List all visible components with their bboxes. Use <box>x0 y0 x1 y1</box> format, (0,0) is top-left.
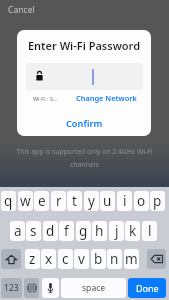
button[interactable]: q <box>1 191 16 211</box>
staticText: e <box>38 192 46 210</box>
button[interactable]: z <box>25 249 40 269</box>
button[interactable]: space <box>61 278 126 298</box>
staticText: v <box>78 250 85 268</box>
button[interactable]: g <box>76 221 91 241</box>
staticText: space <box>82 282 106 294</box>
staticText: j <box>115 222 119 240</box>
staticText: Confirm <box>66 117 103 130</box>
staticText: l <box>148 222 152 240</box>
staticText: h <box>95 222 104 240</box>
staticText: t <box>72 192 77 210</box>
staticText: y <box>88 192 95 210</box>
staticText: c <box>62 250 69 268</box>
button[interactable]: Change Network <box>76 93 137 103</box>
button[interactable]: l <box>142 221 157 241</box>
staticText: i <box>123 192 127 210</box>
staticText: o <box>137 192 146 210</box>
button[interactable]: Backspace <box>147 249 166 269</box>
staticText: Enter Wi-Fi Password <box>17 38 151 53</box>
staticText: z <box>29 250 36 268</box>
staticText: Change Network <box>76 93 137 103</box>
button[interactable]: 123 <box>1 278 22 298</box>
staticText: x <box>45 250 53 268</box>
staticText: d <box>46 222 55 240</box>
staticText: Done <box>136 282 159 294</box>
staticText: f <box>64 222 69 240</box>
staticText: k <box>129 222 137 240</box>
staticText: u <box>103 192 112 210</box>
button[interactable]: Voice input <box>42 278 59 298</box>
button[interactable]: v <box>74 249 89 269</box>
button[interactable]: x <box>41 249 56 269</box>
button[interactable]: k <box>125 221 140 241</box>
staticText: w <box>20 192 31 210</box>
button[interactable]: n <box>107 249 122 269</box>
button[interactable]: h <box>92 221 107 241</box>
staticText: g <box>79 222 88 240</box>
staticText: This app is supported only on 2.4GHz Wi-… <box>7 147 162 169</box>
staticText: m <box>125 250 138 268</box>
staticText: Cancel <box>8 4 35 16</box>
button[interactable]: y <box>84 191 99 211</box>
button[interactable]: f <box>59 221 74 241</box>
button[interactable]: t <box>67 191 82 211</box>
button[interactable]: r <box>51 191 66 211</box>
button[interactable]: i <box>117 191 132 211</box>
staticText: 123 <box>4 282 19 294</box>
staticText: b <box>94 250 103 268</box>
button[interactable]: e <box>34 191 49 211</box>
button[interactable]: m <box>124 249 139 269</box>
button[interactable]: Shift <box>1 249 21 269</box>
button[interactable]: a <box>10 221 25 241</box>
button[interactable]: p <box>150 191 165 211</box>
button[interactable] <box>26 63 143 90</box>
button[interactable]: c <box>58 249 73 269</box>
button[interactable]: Confirm <box>17 112 151 134</box>
staticText: r <box>56 192 62 210</box>
button[interactable]: Done <box>128 278 166 298</box>
button[interactable]: o <box>134 191 149 211</box>
button[interactable]: j <box>109 221 124 241</box>
staticText: q <box>4 192 13 210</box>
button[interactable]: d <box>43 221 58 241</box>
staticText: s <box>30 222 37 240</box>
button[interactable]: w <box>18 191 33 211</box>
staticText: p <box>153 192 162 210</box>
button[interactable]: Cancel <box>4 2 39 18</box>
button[interactable]: Change keyboard <box>24 278 39 298</box>
staticText: a <box>14 222 22 240</box>
button[interactable]: u <box>100 191 115 211</box>
staticText: n <box>110 250 119 268</box>
button[interactable]: s <box>26 221 41 241</box>
staticText: Wi-Fi : S... <box>33 95 58 102</box>
button[interactable]: b <box>91 249 106 269</box>
